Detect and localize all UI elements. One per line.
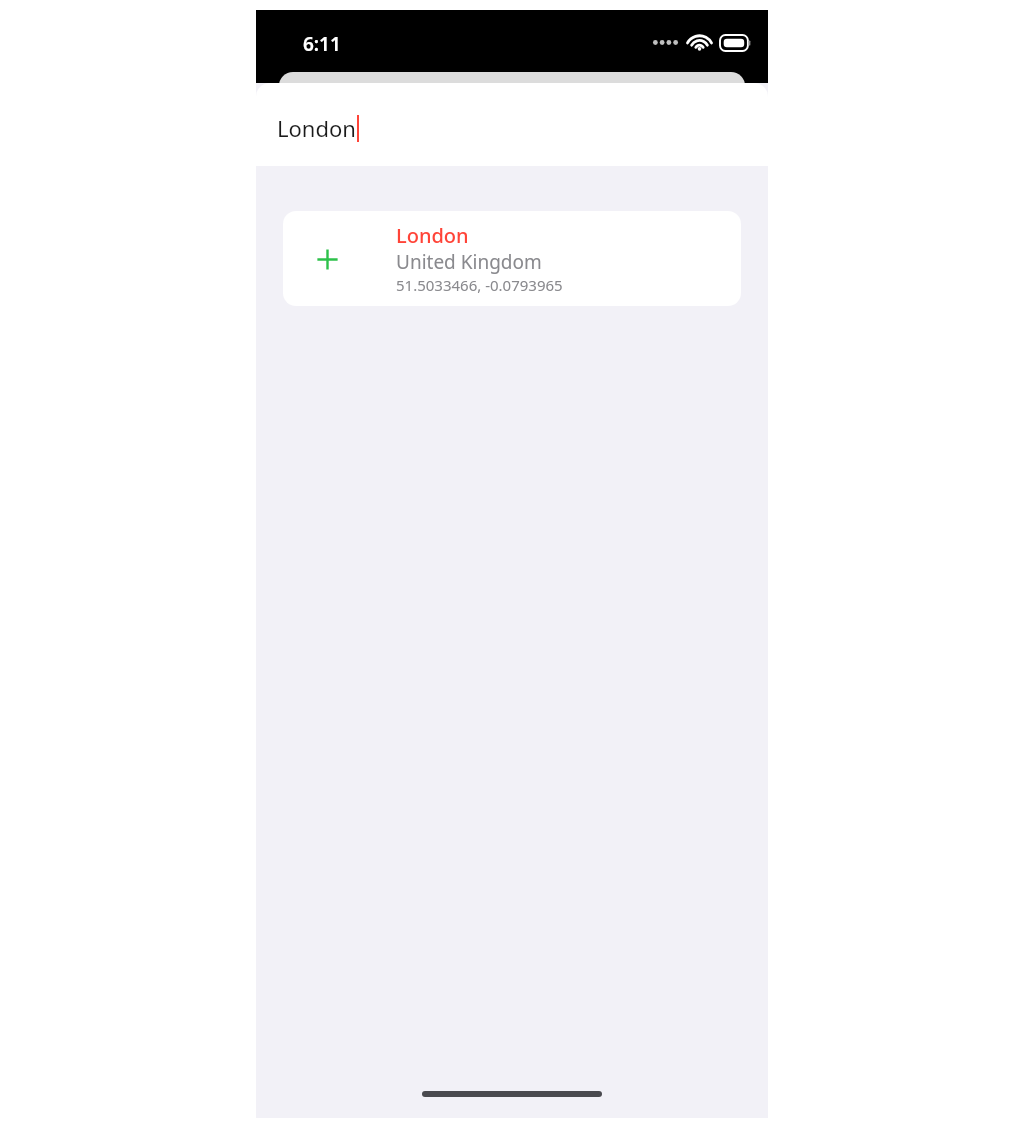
staticText: United Kingdom <box>396 249 542 275</box>
staticText: London <box>396 222 469 249</box>
button[interactable]: Add London <box>283 211 741 306</box>
staticText: London <box>277 113 356 143</box>
button[interactable]: London <box>256 83 768 166</box>
staticText: 6:11 <box>303 31 341 57</box>
staticText: 51.5033466, -0.0793965 <box>396 275 563 295</box>
other: Add London <box>310 242 344 276</box>
